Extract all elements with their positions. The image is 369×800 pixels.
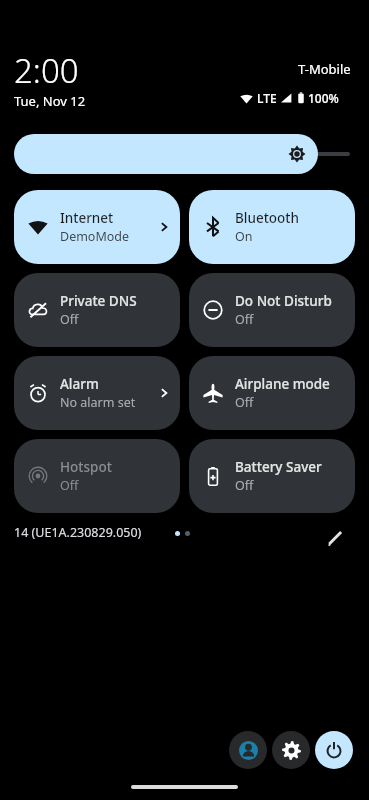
staticText: Battery Saver <box>235 458 322 476</box>
staticText: Off <box>235 394 254 411</box>
button[interactable]: Bluetooth <box>189 190 355 264</box>
staticText: Airplane mode <box>235 375 330 393</box>
staticText: Off <box>235 477 254 494</box>
button[interactable]: Brightness <box>14 134 318 174</box>
button[interactable]: Edit tiles <box>318 521 352 555</box>
staticText: Bluetooth <box>235 209 299 227</box>
staticText: Tue, Nov 12 <box>14 92 86 110</box>
staticText: DemoMode <box>60 228 130 245</box>
staticText: Alarm <box>60 375 99 393</box>
staticText: Private DNS <box>60 292 137 310</box>
staticText: T-Mobile <box>298 60 351 78</box>
staticText: Off <box>60 477 79 494</box>
button[interactable]: Power <box>315 731 353 769</box>
staticText: On <box>235 228 253 245</box>
staticText: Internet <box>60 209 114 227</box>
button[interactable]: Settings <box>272 731 310 769</box>
staticText: LTE <box>257 90 277 106</box>
button[interactable]: Battery Saver <box>189 439 355 513</box>
button[interactable]: Private DNS <box>14 273 180 347</box>
staticText: No alarm set <box>60 394 136 411</box>
staticText: 14 (UE1A.230829.050) <box>14 524 142 541</box>
button[interactable]: Do Not Disturb <box>189 273 355 347</box>
button[interactable]: Internet <box>14 190 180 264</box>
staticText: Do Not Disturb <box>235 292 332 310</box>
staticText: Off <box>235 311 254 328</box>
button[interactable]: Airplane mode <box>189 356 355 430</box>
staticText: Hotspot <box>60 458 112 476</box>
button[interactable]: Alarm <box>14 356 180 430</box>
staticText: 100% <box>308 90 339 106</box>
button[interactable]: Hotspot <box>14 439 180 513</box>
staticText: Off <box>60 311 79 328</box>
staticText: 2:00 <box>14 48 79 93</box>
button[interactable]: User <box>229 731 267 769</box>
